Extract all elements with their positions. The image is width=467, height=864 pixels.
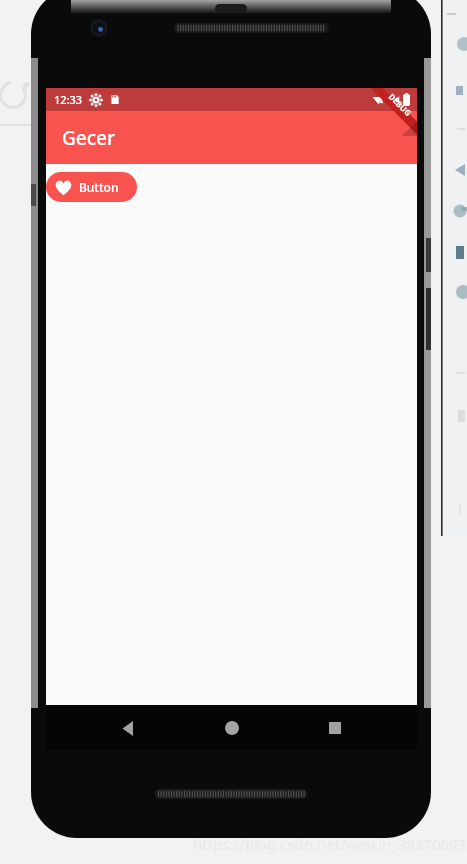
staticText: 12:33 bbox=[54, 92, 83, 107]
button[interactable]: Back bbox=[106, 706, 150, 750]
button[interactable]: Recent apps bbox=[313, 706, 357, 750]
staticText: https://blog.csdn.net/weixin_39370093 bbox=[193, 834, 467, 854]
button[interactable]: Button bbox=[46, 172, 137, 202]
button[interactable]: Home bbox=[210, 706, 254, 750]
staticText: DEBUG bbox=[387, 91, 414, 118]
staticText: Button bbox=[79, 179, 119, 195]
staticText: Gecer bbox=[62, 125, 115, 151]
